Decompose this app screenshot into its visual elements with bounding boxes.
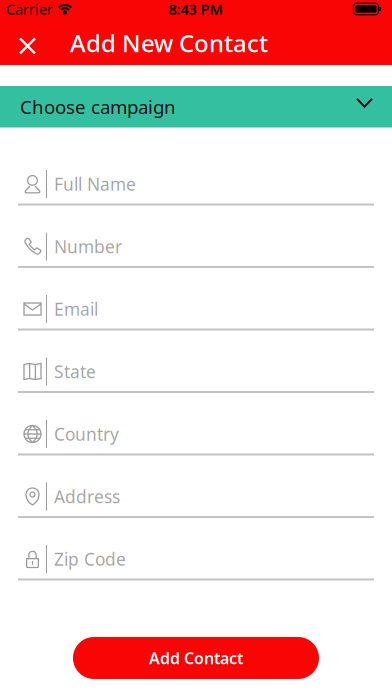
button[interactable]: Choose campaign (0, 86, 392, 127)
staticText: 8:43 PM (168, 0, 223, 19)
staticText: Address (54, 485, 120, 508)
staticText: Number (54, 235, 122, 258)
staticText: Choose campaign (20, 94, 176, 119)
button[interactable]: Close (0, 21, 45, 65)
staticText: Add Contact (149, 647, 243, 669)
staticText: Country (54, 422, 119, 445)
staticText: Zip Code (54, 547, 126, 570)
staticText: Full Name (54, 172, 136, 195)
staticText: State (54, 360, 96, 383)
staticText: Add New Contact (70, 27, 268, 59)
staticText: Email (54, 297, 98, 320)
button[interactable]: Add Contact (73, 637, 319, 679)
staticText: Carrier (6, 0, 53, 19)
